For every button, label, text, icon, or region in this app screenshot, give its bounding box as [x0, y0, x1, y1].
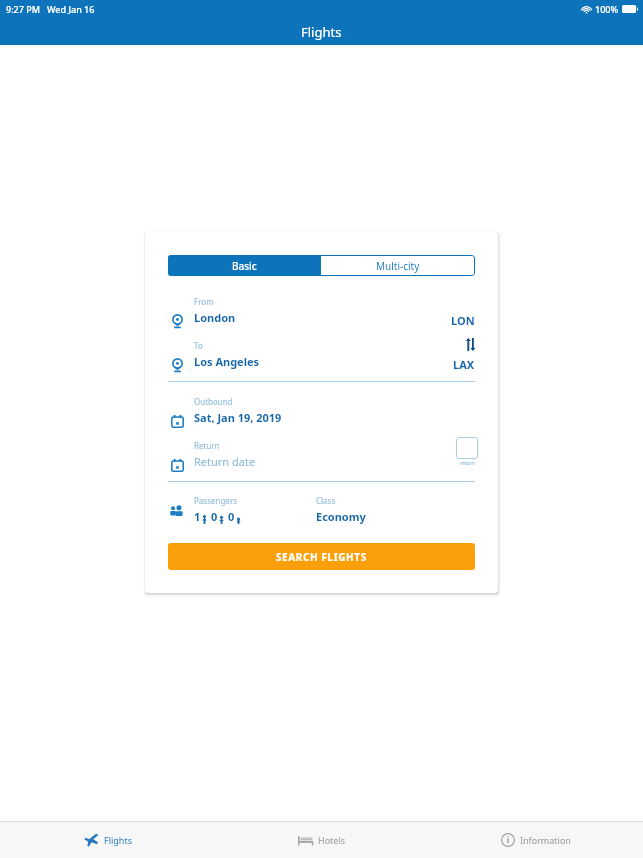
staticText: Outbound [194, 396, 233, 407]
button[interactable]: Multi-city [321, 255, 475, 276]
button[interactable]: Return trip toggle [456, 437, 478, 467]
staticText: Economy [316, 509, 366, 524]
button[interactable]: Return [168, 440, 475, 472]
button[interactable]: Swap origin and destination [460, 334, 480, 354]
button[interactable]: Outbound [168, 396, 475, 428]
staticText: 100% [595, 3, 619, 15]
staticText: To [194, 340, 203, 351]
staticText: Passengers [194, 495, 238, 506]
staticText: LAX [453, 357, 475, 372]
staticText: Flights [301, 23, 342, 41]
staticText: Class [316, 495, 336, 506]
staticText: Basic [232, 259, 257, 273]
staticText: From [194, 296, 214, 307]
staticText: Multi-city [376, 259, 420, 273]
button[interactable]: SEARCH FLIGHTS [168, 543, 475, 570]
staticText: return [460, 460, 475, 467]
staticText: 1 [194, 509, 201, 524]
staticText: Los Angeles [194, 354, 260, 369]
button[interactable]: To [168, 340, 475, 372]
staticText: LON [451, 313, 475, 328]
staticText: Hotels [318, 834, 346, 846]
staticText: Information [520, 834, 571, 846]
button[interactable]: Hotels [215, 822, 429, 858]
staticText: London [194, 310, 236, 325]
button[interactable]: Class [316, 495, 475, 524]
staticText: 0 [228, 509, 235, 524]
button[interactable]: Basic [168, 255, 321, 276]
staticText: Return [194, 440, 220, 451]
button[interactable]: Flights [0, 822, 215, 858]
button[interactable]: From [168, 296, 475, 328]
staticText: 0 [211, 509, 218, 524]
button[interactable]: Information [429, 822, 643, 858]
staticText: 9:27 PM Wed Jan 16 [6, 3, 95, 15]
staticText: Flights [104, 834, 132, 846]
button[interactable]: Passengers [194, 495, 316, 524]
staticText: Sat, Jan 19, 2019 [194, 410, 282, 425]
staticText: SEARCH FLIGHTS [276, 550, 367, 564]
staticText: Return date [194, 454, 256, 469]
